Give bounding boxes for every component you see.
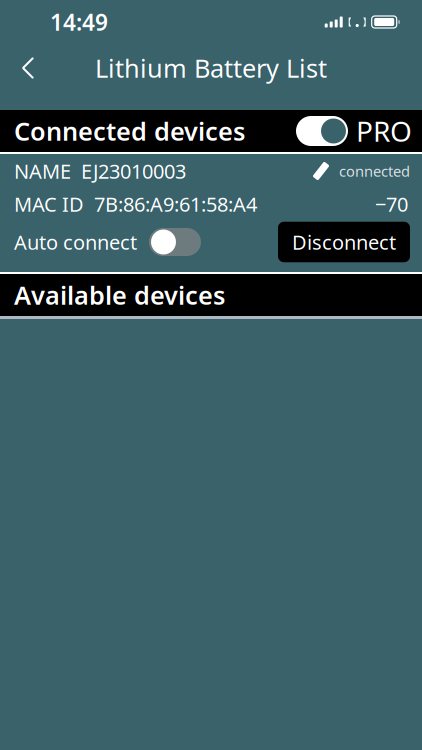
button[interactable]: Back bbox=[6, 46, 50, 90]
staticText: Auto connect bbox=[14, 229, 137, 255]
staticText: connected bbox=[339, 161, 410, 181]
staticText: NAME EJ23010003 bbox=[14, 158, 186, 184]
staticText: −70 bbox=[375, 191, 408, 217]
staticText: Available devices bbox=[14, 278, 225, 312]
button[interactable]: Rename device bbox=[304, 157, 338, 185]
button[interactable]: Auto connect toggle bbox=[137, 228, 201, 256]
staticText: 14:49 bbox=[50, 7, 108, 37]
staticText: MAC ID 7B:86:A9:61:58:A4 bbox=[14, 191, 257, 217]
staticText: Disconnect bbox=[292, 229, 396, 255]
staticText: Connected devices bbox=[14, 114, 245, 148]
staticText: Lithium Battery List bbox=[95, 51, 327, 85]
staticText: PRO bbox=[356, 112, 412, 150]
button[interactable]: Disconnect bbox=[278, 222, 410, 262]
button[interactable]: PRO mode toggle bbox=[296, 116, 348, 146]
